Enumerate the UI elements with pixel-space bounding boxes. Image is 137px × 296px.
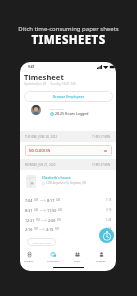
button[interactable]: Projects (20, 248, 41, 266)
staticText: NO CLOCK IN (29, 149, 51, 153)
staticText: 11:50 (47, 208, 57, 213)
button[interactable]: Settings (89, 248, 113, 266)
staticText: Elizabeth's house (42, 175, 71, 180)
button[interactable]: Browse Employees (24, 91, 113, 102)
staticText: 6:25 (46, 237, 54, 242)
staticText: 1:45 (106, 218, 112, 222)
staticText: PM (55, 227, 59, 231)
staticText: 8:17 (47, 198, 55, 203)
staticText: 1200 Anywhere St, Anytown, MI (46, 181, 86, 185)
staticText: AM (34, 208, 39, 212)
staticText: PM (57, 218, 61, 222)
button[interactable]: Timesheet (41, 248, 65, 266)
staticText: 8:31 (25, 208, 33, 213)
button[interactable]: Start timer (99, 228, 114, 243)
staticText: 2:16 (25, 227, 33, 232)
button[interactable]: NO CLOCK IN (25, 145, 112, 156)
staticText: 1:23 (106, 237, 112, 241)
staticText: AM (58, 208, 63, 212)
staticText: 7 HRS 37 MIN (92, 163, 111, 167)
staticText: Timesheet (47, 259, 60, 262)
staticText: AM (56, 198, 61, 202)
button[interactable]: Elizabeth's house (42, 175, 112, 185)
staticText: Browse Employees (53, 94, 85, 99)
staticText: 2:06 (48, 218, 56, 223)
staticText: Settings (96, 259, 106, 262)
button[interactable]: Add Time Entry (27, 238, 56, 246)
staticText: Team (74, 259, 81, 262)
staticText: PM (34, 237, 38, 241)
staticText: 28.25 Hours Logged (55, 111, 89, 116)
staticText: Add Time Entry (33, 241, 51, 244)
staticText: Projects (24, 259, 34, 262)
staticText: AM (34, 198, 39, 202)
staticText: TUESDAY, JUNE 28, 2022 (25, 135, 58, 139)
staticText: 1:13 (106, 198, 112, 202)
staticText: Ditch time-consuming paper sheets (0, 25, 137, 33)
button[interactable]: Team (65, 248, 89, 266)
staticText: 7 HRS 27 MIN (92, 135, 111, 139)
staticText: PM (36, 218, 40, 222)
staticText: Timesheet (24, 72, 64, 82)
staticText: MONDAY, JUN 27, 2022 (25, 163, 56, 167)
button[interactable]: WES SCOTT (50, 107, 110, 116)
staticText: 5:02 (25, 237, 33, 242)
staticText: TIMESHEETS (0, 32, 137, 48)
staticText: 9:41 (28, 65, 35, 69)
staticText: PM (34, 227, 38, 231)
staticText: WES SCOTT (50, 107, 65, 110)
staticText: 7:04 (25, 198, 33, 203)
staticText: Updated Jun 28 · Sunday 10:41 AM (24, 82, 76, 86)
staticText: 4:15 (46, 227, 54, 232)
staticText: 12:21 (25, 218, 35, 223)
staticText: 1:59 (106, 227, 112, 231)
staticText: 3:19 (106, 208, 112, 212)
